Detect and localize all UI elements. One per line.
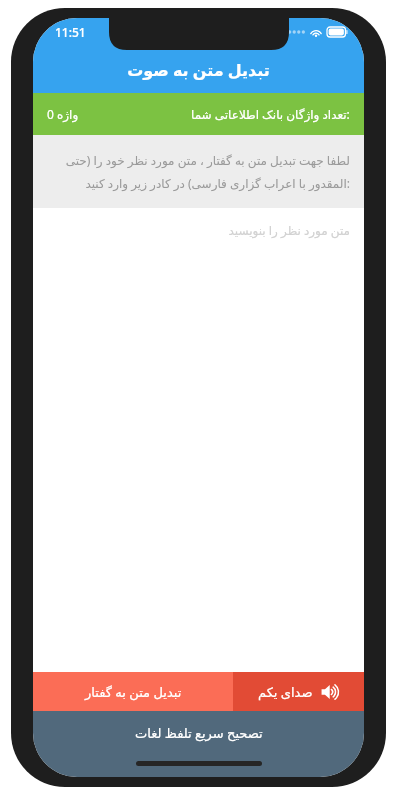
button[interactable]: تصحیح سریع تلفظ لغات — [33, 711, 364, 777]
staticText: 11:51 — [55, 24, 86, 40]
staticText: 0 واژه — [47, 106, 79, 122]
button[interactable]: Select voice — [233, 672, 364, 711]
staticText: متن مورد نظر را بنویسید — [47, 222, 350, 238]
staticText: تبدیل متن به صوت — [127, 59, 270, 81]
staticText: تبدیل متن به گفتار — [85, 683, 182, 701]
staticText: لطفا جهت تبدیل متن به گفتار ، متن مورد ن… — [47, 152, 350, 191]
staticText: تصحیح سریع تلفظ لغات — [135, 724, 263, 742]
button[interactable]: 0 واژه — [33, 93, 364, 135]
button[interactable]: تبدیل متن به گفتار — [33, 672, 233, 711]
staticText: صدای یکم — [258, 683, 313, 701]
staticText: تعداد واژگان بانک اطلاعاتی شما: — [191, 106, 350, 122]
